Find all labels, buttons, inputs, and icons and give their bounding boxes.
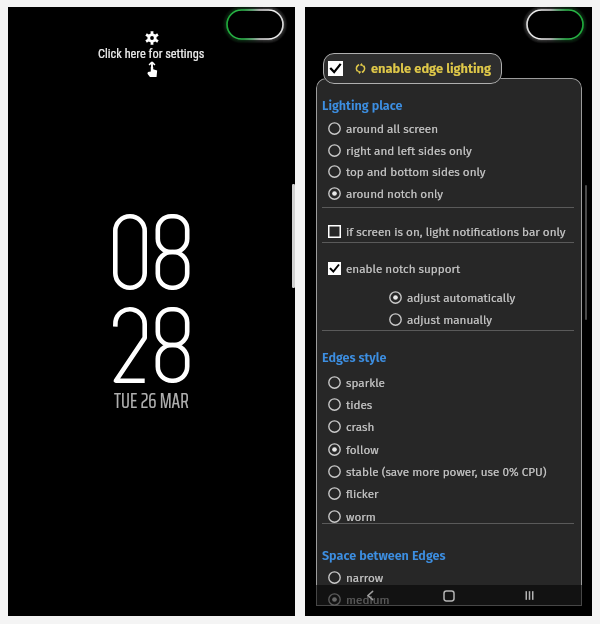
button[interactable]: medium xyxy=(322,589,390,610)
button[interactable]: right and left sides only xyxy=(322,140,472,161)
staticText: around all screen xyxy=(346,122,439,136)
staticText: if screen is on, light notifications bar… xyxy=(346,225,566,239)
button[interactable]: Open settings xyxy=(8,31,295,77)
button[interactable]: Home xyxy=(438,585,459,606)
staticText: adjust manually xyxy=(407,313,492,327)
button[interactable]: adjust manually xyxy=(383,309,492,330)
staticText: crash xyxy=(346,420,375,434)
staticText: follow xyxy=(346,443,379,457)
staticText: TUE 26 MAR xyxy=(114,384,189,417)
staticText: adjust automatically xyxy=(407,291,516,305)
staticText: enable edge lighting xyxy=(371,61,492,76)
button[interactable]: crash xyxy=(322,416,375,437)
staticText: medium xyxy=(346,593,390,607)
button[interactable]: enable notch support xyxy=(322,258,461,279)
button[interactable]: sparkle xyxy=(322,372,385,393)
button[interactable]: tides xyxy=(322,394,373,415)
button[interactable]: if screen is on, light notifications bar… xyxy=(322,221,566,242)
button[interactable]: top and bottom sides only xyxy=(322,161,486,182)
staticText: enable notch support xyxy=(346,262,461,276)
staticText: tides xyxy=(346,398,373,412)
button[interactable]: enable edge lighting xyxy=(323,53,502,84)
button[interactable]: flicker xyxy=(322,483,379,504)
staticText: Space between Edges xyxy=(322,548,446,563)
staticText: sparkle xyxy=(346,376,385,390)
staticText: top and bottom sides only xyxy=(346,165,486,179)
staticText: narrow xyxy=(346,571,384,585)
staticText: right and left sides only xyxy=(346,144,472,158)
button[interactable]: adjust automatically xyxy=(383,287,516,308)
staticText: Edges style xyxy=(322,350,387,365)
button[interactable]: worm xyxy=(322,506,376,527)
button[interactable]: Recent apps xyxy=(519,585,540,606)
button[interactable]: around all screen xyxy=(322,118,439,139)
button[interactable]: stable (save more power, use 0% CPU) xyxy=(322,461,547,482)
staticText: worm xyxy=(346,510,376,524)
button[interactable]: narrow xyxy=(322,567,384,588)
button[interactable]: follow xyxy=(322,439,379,460)
staticText: around notch only xyxy=(346,187,444,201)
button[interactable]: around notch only xyxy=(322,183,444,204)
staticText: Click here for settings xyxy=(98,47,205,61)
staticText: stable (save more power, use 0% CPU) xyxy=(346,465,547,479)
button[interactable]: Back xyxy=(360,585,381,606)
staticText: flicker xyxy=(346,487,379,501)
staticText: Lighting place xyxy=(322,98,403,113)
